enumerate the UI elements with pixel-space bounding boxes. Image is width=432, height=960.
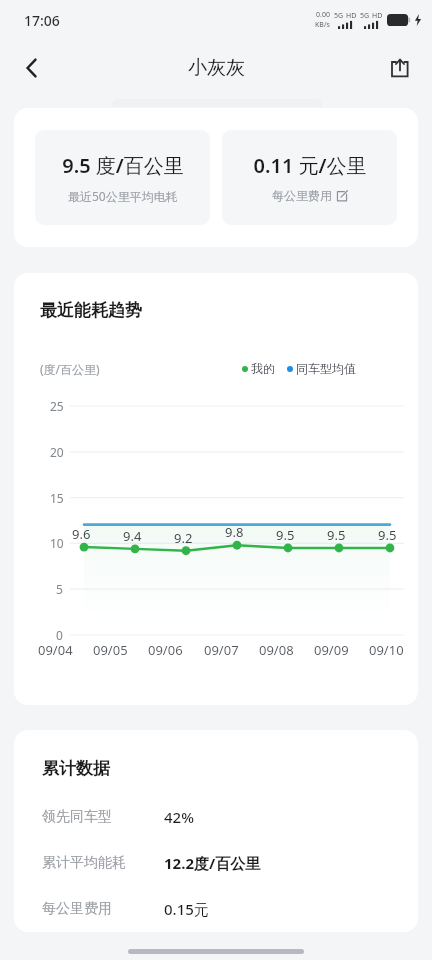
staticText: 5G [334,11,344,21]
staticText: 领先同车型 [42,808,112,826]
staticText: 小灰灰 [188,56,245,80]
staticText: 9.5 [327,526,346,544]
staticText: 9.5 度/百公里 [62,152,184,179]
staticText: 每公里费用 [272,188,332,203]
staticText: 09/08 [259,641,294,659]
staticText: 9.8 [225,523,244,541]
staticText: 9.6 [72,525,91,543]
staticText: HD [346,11,357,21]
staticText: 累计数据 [42,758,110,779]
staticText: 同车型均值 [296,361,356,376]
staticText: 09/05 [93,641,128,659]
staticText: (度/百公里) [40,361,100,377]
staticText: 每公里费用 [42,900,112,918]
staticText: 9.4 [123,527,142,545]
staticText: 25 [50,398,64,414]
staticText: 最近50公里平均电耗 [68,188,178,204]
staticText: 09/10 [369,641,404,659]
staticText: 09/09 [314,641,349,659]
staticText: 15 [50,490,64,506]
staticText: KB/s [315,20,330,30]
staticText: 12.2度/百公里 [164,853,261,873]
button[interactable]: 0.11 元/公里 [222,130,397,225]
staticText: 9.2 [174,529,193,547]
button[interactable]: Back [8,44,56,92]
staticText: 09/07 [204,641,239,659]
staticText: 0 [56,627,63,643]
staticText: 5 [56,581,63,597]
staticText: 9.5 [378,526,397,544]
staticText: 09/06 [148,641,183,659]
staticText: 0.15元 [164,899,209,919]
staticText: 5G [360,11,370,21]
staticText: 42% [164,807,194,827]
staticText: 累计平均能耗 [42,854,126,872]
staticText: 10 [50,535,64,551]
staticText: 20 [50,444,64,460]
button[interactable]: Share [376,44,424,92]
staticText: 最近能耗趋势 [40,300,142,321]
staticText: 09/04 [38,641,73,659]
staticText: 0.11 元/公里 [253,152,367,179]
button[interactable]: 9.5 度/百公里 [35,130,210,225]
staticText: 9.5 [276,526,295,544]
staticText: 0.00 [316,10,330,20]
staticText: 17:06 [24,11,60,30]
staticText: 我的 [251,361,275,376]
staticText: HD [372,11,383,21]
